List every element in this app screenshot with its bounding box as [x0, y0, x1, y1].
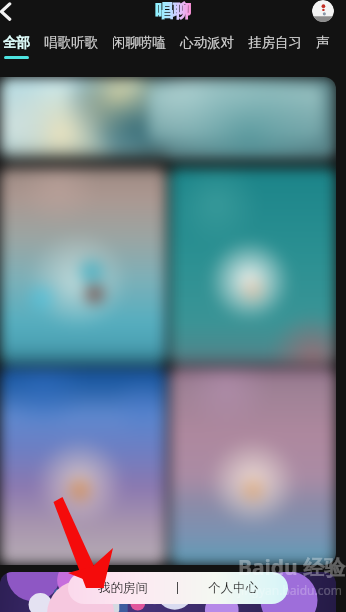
button[interactable]: 我的房间 [68, 572, 288, 604]
staticText: 个人中心 [208, 580, 258, 596]
staticText: 我的房间 [98, 580, 148, 596]
button[interactable]: 个人中心 [178, 572, 288, 604]
button[interactable]: Back [0, 0, 17, 26]
button[interactable]: 挂房自习 [248, 34, 302, 51]
staticText: jingyan.baidu.com [238, 582, 342, 598]
button[interactable] [0, 368, 166, 565]
button[interactable] [170, 368, 336, 565]
button[interactable] [0, 77, 336, 159]
button[interactable]: 全部 [3, 34, 30, 59]
button[interactable] [0, 168, 166, 365]
staticText: Baidu 经验 [238, 553, 346, 582]
button[interactable] [170, 168, 336, 365]
staticText: 声 [316, 34, 330, 51]
button[interactable]: 闲聊唠嗑 [112, 34, 166, 51]
button[interactable]: 声 [316, 34, 330, 51]
button[interactable]: 心动派对 [180, 34, 234, 51]
staticText: 心动派对 [180, 34, 234, 51]
staticText: 闲聊唠嗑 [112, 34, 166, 51]
staticText: 全部 [3, 34, 30, 51]
staticText: 唱聊 [155, 0, 191, 23]
button[interactable]: 唱歌听歌 [44, 34, 98, 51]
staticText: 唱歌听歌 [44, 34, 98, 51]
button[interactable]: Profile [312, 0, 334, 22]
button[interactable]: 我的房间 [68, 572, 177, 604]
staticText: 挂房自习 [248, 34, 302, 51]
